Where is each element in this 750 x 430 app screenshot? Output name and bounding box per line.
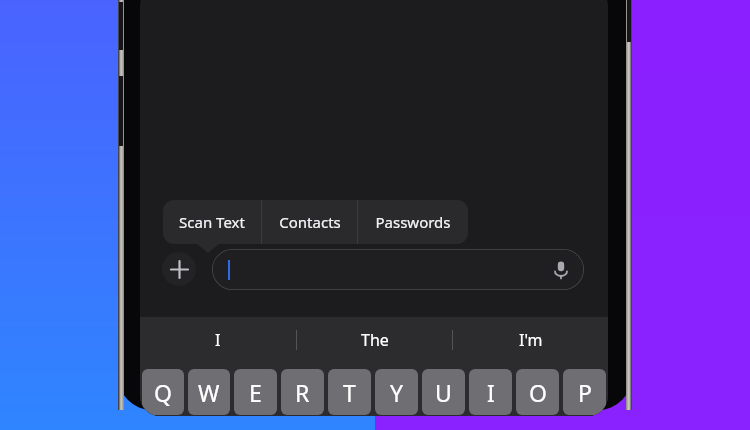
staticText: Passwords [375, 212, 451, 232]
button[interactable]: Contacts [262, 200, 357, 244]
button[interactable]: U [422, 369, 465, 415]
staticText: Q [154, 377, 172, 408]
staticText: I [487, 377, 495, 408]
staticText: O [529, 377, 547, 408]
staticText: Scan Text [179, 212, 245, 232]
button[interactable]: I'm [453, 317, 608, 363]
button[interactable]: Y [375, 369, 418, 415]
button[interactable]: W [188, 369, 230, 415]
staticText: U [435, 377, 452, 408]
button[interactable]: P [563, 369, 606, 415]
staticText: I [215, 329, 221, 351]
button[interactable]: Passwords [358, 200, 468, 244]
button[interactable]: Dictate [212, 249, 584, 290]
staticText: T [343, 377, 356, 408]
button[interactable]: Dictate [550, 259, 572, 281]
staticText: R [295, 377, 310, 408]
button[interactable]: R [281, 369, 324, 415]
staticText: E [249, 377, 262, 408]
button[interactable]: T [328, 369, 371, 415]
staticText: The [361, 329, 389, 351]
button[interactable]: Scan Text [163, 200, 261, 244]
button[interactable]: The [297, 317, 452, 363]
staticText: Y [390, 377, 404, 408]
button[interactable]: E [234, 369, 277, 415]
button[interactable]: O [516, 369, 559, 415]
staticText: W [198, 377, 220, 408]
button[interactable]: Q [142, 369, 184, 415]
button[interactable]: I [140, 317, 296, 363]
staticText: I'm [519, 329, 543, 351]
staticText: P [578, 377, 592, 408]
button[interactable]: I [469, 369, 512, 415]
button[interactable]: Add attachment [162, 252, 196, 286]
staticText: Contacts [279, 212, 341, 232]
